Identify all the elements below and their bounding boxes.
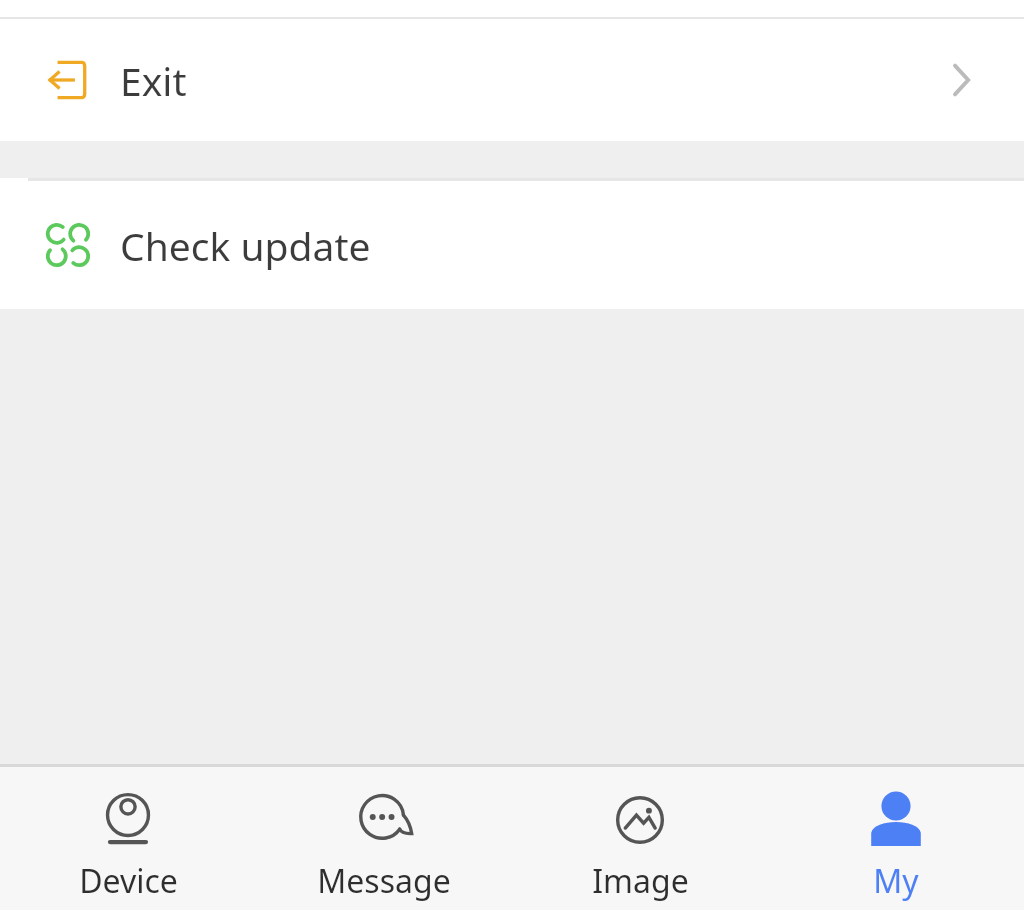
staticText: Device — [79, 859, 178, 903]
staticText: Exit — [120, 54, 187, 107]
staticText: Message — [317, 859, 451, 903]
staticText: My — [873, 859, 919, 903]
staticText: Image — [592, 859, 689, 903]
button[interactable]: My — [768, 767, 1024, 910]
button[interactable]: Image — [512, 767, 768, 910]
staticText: Check update — [120, 219, 371, 272]
button[interactable]: Check update — [0, 181, 1024, 309]
button[interactable]: Exit — [0, 19, 1024, 141]
button[interactable]: Message — [256, 767, 512, 910]
button[interactable]: Device — [0, 767, 256, 910]
